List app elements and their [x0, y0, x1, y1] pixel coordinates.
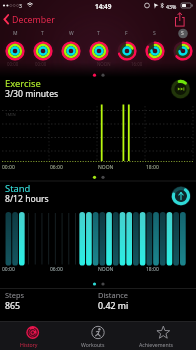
button[interactable]: [172, 11, 188, 28]
staticText: M: [13, 30, 18, 37]
staticText: F: [125, 30, 128, 37]
staticText: 16:00: [131, 61, 143, 67]
button[interactable]: History: [0, 322, 65, 350]
button[interactable]: [169, 78, 192, 101]
staticText: T: [97, 30, 100, 37]
button[interactable]: [0, 38, 196, 66]
staticText: 8/12 hours: [5, 193, 49, 205]
staticText: 3/30 minutes: [5, 88, 59, 100]
staticText: Workouts: [81, 341, 105, 348]
button[interactable]: December: [2, 12, 62, 27]
button[interactable]: [169, 185, 192, 208]
staticText: 00:00: [2, 266, 15, 273]
staticText: NOON: [98, 164, 114, 171]
staticText: 00:00: [35, 61, 47, 67]
staticText: 0.42 mi: [98, 300, 129, 312]
staticText: 18:00: [146, 266, 159, 273]
staticText: 43%: [166, 3, 177, 10]
staticText: W: [69, 30, 74, 37]
staticText: NOON: [97, 61, 111, 67]
button[interactable]: Distance: [96, 289, 196, 315]
button[interactable]: Achievements: [131, 322, 196, 350]
staticText: 14:49: [95, 2, 112, 11]
staticText: 06:00: [50, 266, 63, 273]
staticText: 00:00: [7, 61, 19, 67]
staticText: T: [41, 30, 44, 37]
staticText: Exercise: [5, 77, 41, 90]
staticText: History: [20, 341, 38, 348]
staticText: 1MIN: [5, 112, 16, 118]
staticText: S: [153, 30, 156, 37]
staticText: 00:00: [2, 164, 15, 171]
staticText: 18:00: [146, 164, 159, 171]
button[interactable]: Workouts: [65, 322, 131, 350]
staticText: Steps: [5, 290, 24, 300]
staticText: 3: [19, 3, 22, 10]
staticText: NOON: [98, 266, 114, 273]
staticText: Achievements: [139, 341, 174, 348]
button[interactable]: Steps: [0, 289, 96, 315]
staticText: S: [181, 30, 184, 37]
staticText: December: [12, 14, 55, 26]
staticText: 06:00: [50, 164, 63, 171]
staticText: Distance: [98, 290, 128, 300]
staticText: Stand: [5, 182, 31, 195]
staticText: 865: [5, 300, 21, 312]
